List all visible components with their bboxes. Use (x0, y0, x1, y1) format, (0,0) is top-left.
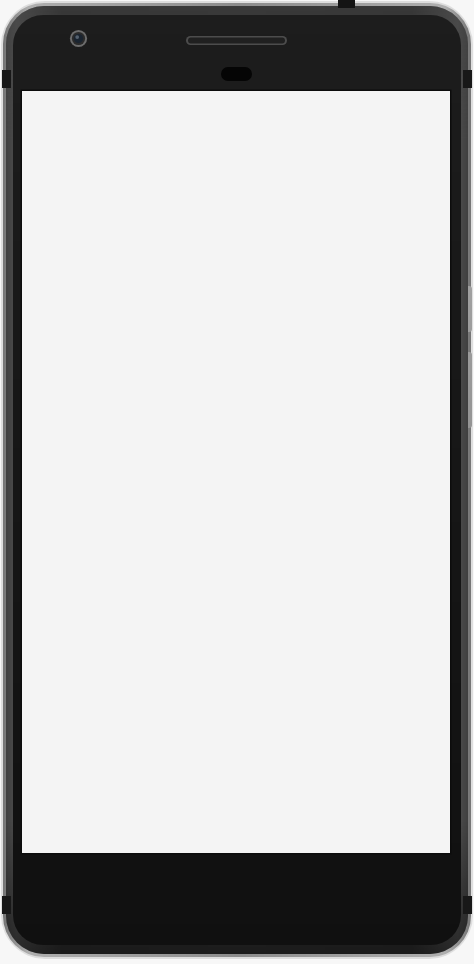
button[interactable]: Phone device mockup with blank screen (0, 0, 474, 964)
